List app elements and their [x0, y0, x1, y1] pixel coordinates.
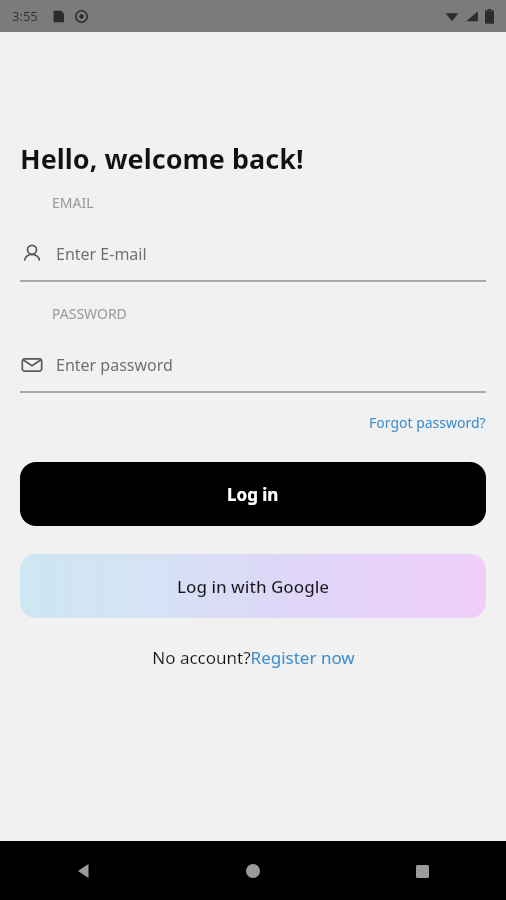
- button[interactable]: No account?Register now: [152, 646, 355, 669]
- button[interactable]: Home: [229, 847, 277, 895]
- staticText: EMAIL: [52, 193, 94, 212]
- button[interactable]: Enter E-mail: [0, 242, 506, 282]
- staticText: 3:55: [12, 7, 38, 25]
- button[interactable]: Back: [60, 847, 108, 895]
- staticText: Enter password: [56, 354, 173, 376]
- staticText: Forgot password?: [369, 413, 486, 432]
- button[interactable]: Enter password: [0, 353, 506, 393]
- staticText: Log in: [227, 483, 279, 506]
- button[interactable]: Recent apps: [398, 847, 446, 895]
- staticText: No account?Register now: [152, 646, 355, 669]
- button[interactable]: Log in: [20, 462, 486, 526]
- staticText: Hello, welcome back!: [20, 140, 304, 177]
- staticText: Enter E-mail: [56, 243, 147, 265]
- staticText: PASSWORD: [52, 304, 127, 323]
- button[interactable]: Log in with Google: [20, 554, 486, 618]
- button[interactable]: Forgot password?: [369, 413, 486, 432]
- staticText: Log in with Google: [177, 575, 330, 598]
